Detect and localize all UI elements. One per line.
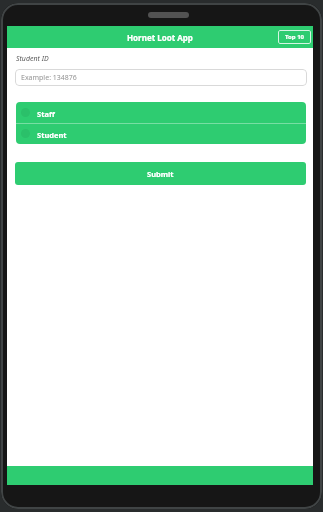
button[interactable]: Staff (16, 102, 306, 123)
staticText: Top 10 (285, 33, 305, 41)
button[interactable]: Student (16, 124, 306, 144)
staticText: Student ID (16, 54, 49, 64)
staticText: Hornet Loot App (127, 32, 193, 43)
staticText: Example: 134876 (21, 73, 77, 83)
button[interactable]: Top 10 (278, 30, 311, 44)
staticText: Submit (147, 169, 174, 179)
staticText: Staff (37, 109, 55, 119)
staticText: Student (37, 130, 67, 140)
button[interactable]: Example: 134876 (15, 69, 307, 86)
button[interactable]: Submit (15, 162, 306, 185)
